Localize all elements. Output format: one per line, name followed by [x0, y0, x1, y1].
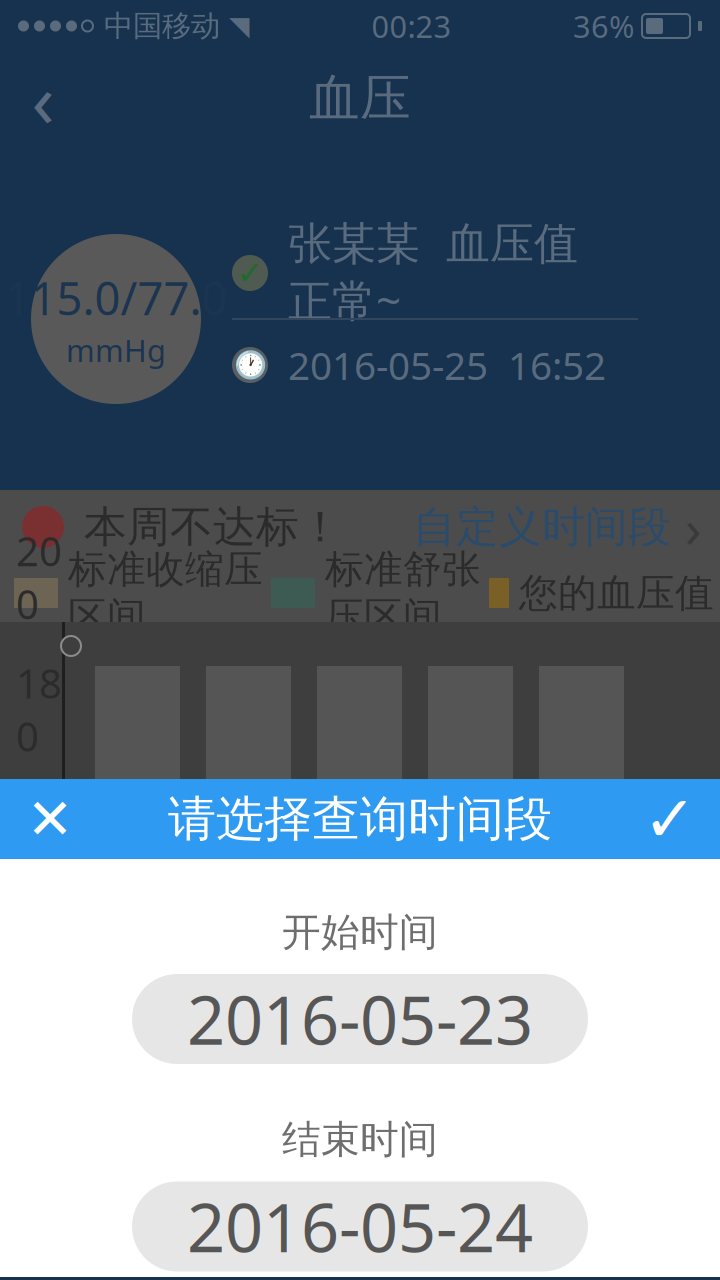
- staticText: ◥: [229, 11, 250, 41]
- staticText: 中国移动: [104, 8, 220, 44]
- staticText: 您的血压值: [519, 569, 714, 617]
- button[interactable]: 确定: [620, 779, 720, 859]
- staticText: 请选择查询时间段: [168, 789, 552, 848]
- staticText: 36%: [573, 6, 634, 46]
- button[interactable]: 取消: [0, 779, 100, 859]
- staticText: 标准收缩压区间: [68, 545, 263, 640]
- staticText: 自定义时间段: [413, 501, 671, 553]
- staticText: 2016-05-24: [187, 1182, 533, 1271]
- staticText: 本周不达标！: [84, 501, 342, 553]
- staticText: 115.0/77.0: [4, 267, 227, 328]
- staticText: 张某某 血压值正常~: [288, 217, 578, 329]
- staticText: 标准舒张压区间: [325, 545, 481, 640]
- staticText: 00:23: [371, 6, 451, 46]
- staticText: ✓: [236, 255, 263, 291]
- staticText: 180: [16, 656, 62, 763]
- staticText: 2016-05-23: [187, 975, 533, 1063]
- staticText: 结束时间: [282, 1116, 438, 1163]
- button[interactable]: 2016-05-24: [132, 1181, 588, 1271]
- button[interactable]: ︵: [0, 490, 720, 564]
- button[interactable]: 返回: [0, 49, 86, 147]
- staticText: ︵: [29, 511, 56, 543]
- staticText: 血压: [309, 67, 411, 130]
- staticText: 开始时间: [282, 908, 438, 956]
- staticText: ›: [685, 492, 702, 562]
- staticText: ✕: [26, 787, 73, 851]
- staticText: 160: [16, 789, 62, 895]
- button[interactable]: 2016-05-23: [132, 974, 588, 1064]
- staticText: 200: [16, 524, 62, 630]
- staticText: mmHg: [66, 330, 166, 370]
- staticText: ✓: [643, 783, 697, 855]
- staticText: 2016-05-25 16:52: [288, 339, 606, 391]
- staticText: 🕐: [233, 350, 266, 380]
- staticText: ‹: [31, 49, 54, 148]
